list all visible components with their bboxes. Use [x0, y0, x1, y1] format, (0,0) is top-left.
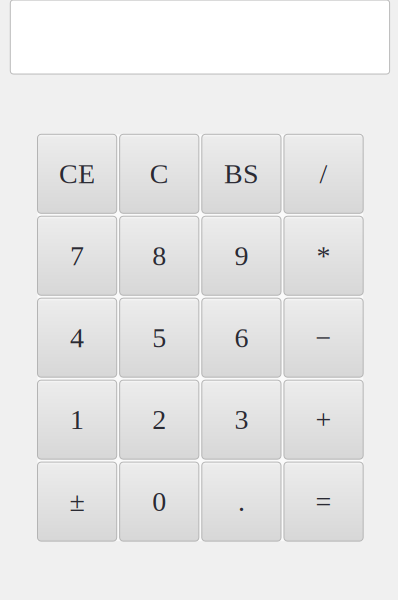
- staticText: 0: [152, 486, 166, 517]
- button[interactable]: Zero: [120, 462, 199, 541]
- staticText: C: [150, 158, 169, 189]
- button[interactable]: Multiply: [284, 216, 363, 295]
- button[interactable]: Four: [37, 298, 117, 377]
- staticText: 8: [152, 240, 166, 271]
- button[interactable]: Backspace: [202, 134, 281, 213]
- button[interactable]: Divide: [284, 134, 363, 213]
- staticText: 7: [70, 240, 84, 271]
- button[interactable]: Six: [202, 298, 281, 377]
- button[interactable]: Plus: [284, 380, 363, 459]
- button[interactable]: Three: [202, 380, 281, 459]
- staticText: 3: [234, 404, 248, 435]
- staticText: CE: [59, 158, 95, 189]
- button[interactable]: Decimal point: [202, 462, 281, 541]
- button[interactable]: Plus or minus: [37, 462, 117, 541]
- staticText: −: [316, 322, 332, 353]
- button[interactable]: Eight: [120, 216, 199, 295]
- staticText: ±: [70, 486, 85, 517]
- staticText: 6: [234, 322, 248, 353]
- staticText: 1: [70, 404, 84, 435]
- button[interactable]: Equals: [284, 462, 363, 541]
- button[interactable]: One: [37, 380, 117, 459]
- staticText: .: [238, 486, 245, 517]
- staticText: =: [316, 486, 332, 517]
- button[interactable]: Two: [120, 380, 199, 459]
- staticText: 2: [152, 404, 166, 435]
- staticText: 4: [70, 322, 84, 353]
- button[interactable]: Nine: [202, 216, 281, 295]
- button[interactable]: Clear: [120, 134, 199, 213]
- staticText: *: [317, 240, 331, 271]
- button[interactable]: Five: [120, 298, 199, 377]
- staticText: /: [320, 158, 328, 189]
- button[interactable]: Seven: [37, 216, 117, 295]
- button[interactable]: Minus: [284, 298, 363, 377]
- staticText: 9: [234, 240, 248, 271]
- staticText: +: [316, 404, 332, 435]
- button[interactable]: Clear entry: [37, 134, 117, 213]
- staticText: 5: [152, 322, 166, 353]
- staticText: BS: [224, 158, 259, 189]
